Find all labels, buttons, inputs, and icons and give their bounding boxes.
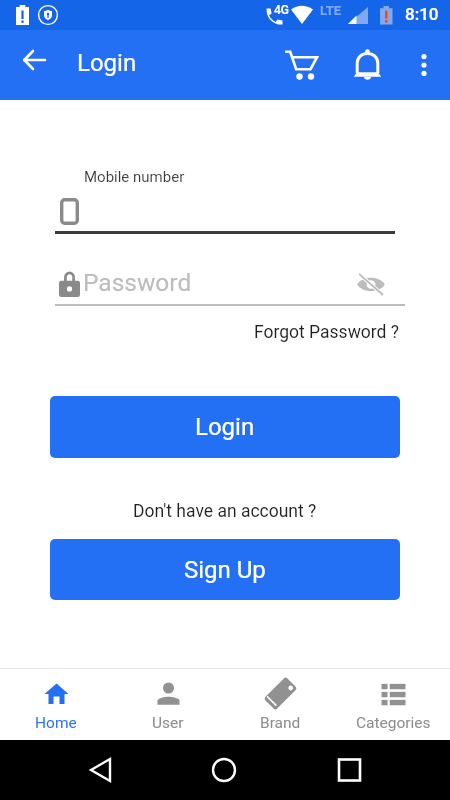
staticText: 8:10: [405, 4, 439, 24]
staticText: 4G: [274, 3, 289, 17]
button[interactable]: User: [112, 669, 224, 740]
button[interactable]: Toggle password visibility: [348, 261, 394, 307]
staticText: Brand: [260, 714, 301, 732]
button[interactable]: Categories: [337, 669, 450, 740]
button[interactable]: Sign Up: [50, 539, 400, 600]
staticText: LTE: [320, 3, 342, 18]
button[interactable]: Back: [9, 35, 59, 85]
staticText: Forgot Password ?: [254, 322, 400, 343]
button[interactable]: Forgot Password ?: [240, 316, 400, 348]
staticText: Home: [35, 714, 77, 732]
staticText: Don't have an account ?: [133, 501, 317, 522]
button[interactable]: Cart: [278, 43, 326, 87]
button[interactable]: Home: [0, 669, 112, 740]
staticText: Login: [77, 49, 137, 77]
staticText: Mobile number: [84, 168, 185, 186]
button[interactable]: Brand: [224, 669, 337, 740]
button[interactable]: Login: [50, 396, 400, 458]
staticText: Categories: [356, 714, 431, 732]
staticText: Login: [195, 413, 255, 441]
staticText: User: [152, 714, 184, 732]
button[interactable]: More options: [404, 43, 444, 87]
staticText: Password: [83, 268, 192, 297]
button[interactable]: Notifications: [344, 43, 391, 87]
staticText: Sign Up: [184, 556, 266, 584]
